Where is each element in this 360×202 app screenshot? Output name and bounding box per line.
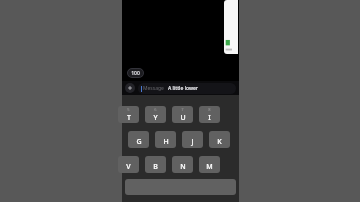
staticText: V <box>126 162 131 172</box>
button[interactable]: Message <box>138 83 236 94</box>
staticText: Message <box>143 85 164 92</box>
staticText: 100 <box>131 70 140 77</box>
button[interactable]: H <box>155 131 176 148</box>
staticText: Y <box>153 113 158 123</box>
button[interactable]: 8 <box>199 106 220 123</box>
staticText: U <box>180 113 186 123</box>
staticText: J <box>191 137 194 147</box>
staticText: B <box>153 162 158 172</box>
button[interactable]: N <box>172 156 193 173</box>
button[interactable]: J <box>182 131 203 148</box>
staticText: I <box>208 113 211 123</box>
staticText: K <box>217 137 222 147</box>
staticText: 7 <box>181 107 184 112</box>
button[interactable]: 6 <box>145 106 166 123</box>
button[interactable]: K <box>209 131 230 148</box>
staticText: 6 <box>154 107 157 112</box>
staticText: M <box>206 162 213 172</box>
staticText: 8 <box>208 107 211 112</box>
button[interactable]: Add attachment <box>125 83 135 93</box>
button[interactable]: 100 <box>127 68 144 78</box>
button[interactable]: V <box>118 156 139 173</box>
staticText: G <box>136 137 142 147</box>
staticText: 5 <box>127 107 130 112</box>
staticText: N <box>180 162 186 172</box>
button[interactable]: 7 <box>172 106 193 123</box>
button[interactable]: B <box>145 156 166 173</box>
staticText: T <box>127 113 131 123</box>
staticText: A little lower <box>168 85 198 92</box>
button[interactable]: 5 <box>118 106 139 123</box>
button[interactable]: G <box>128 131 149 148</box>
button[interactable]: M <box>199 156 220 173</box>
staticText: H <box>163 137 169 147</box>
